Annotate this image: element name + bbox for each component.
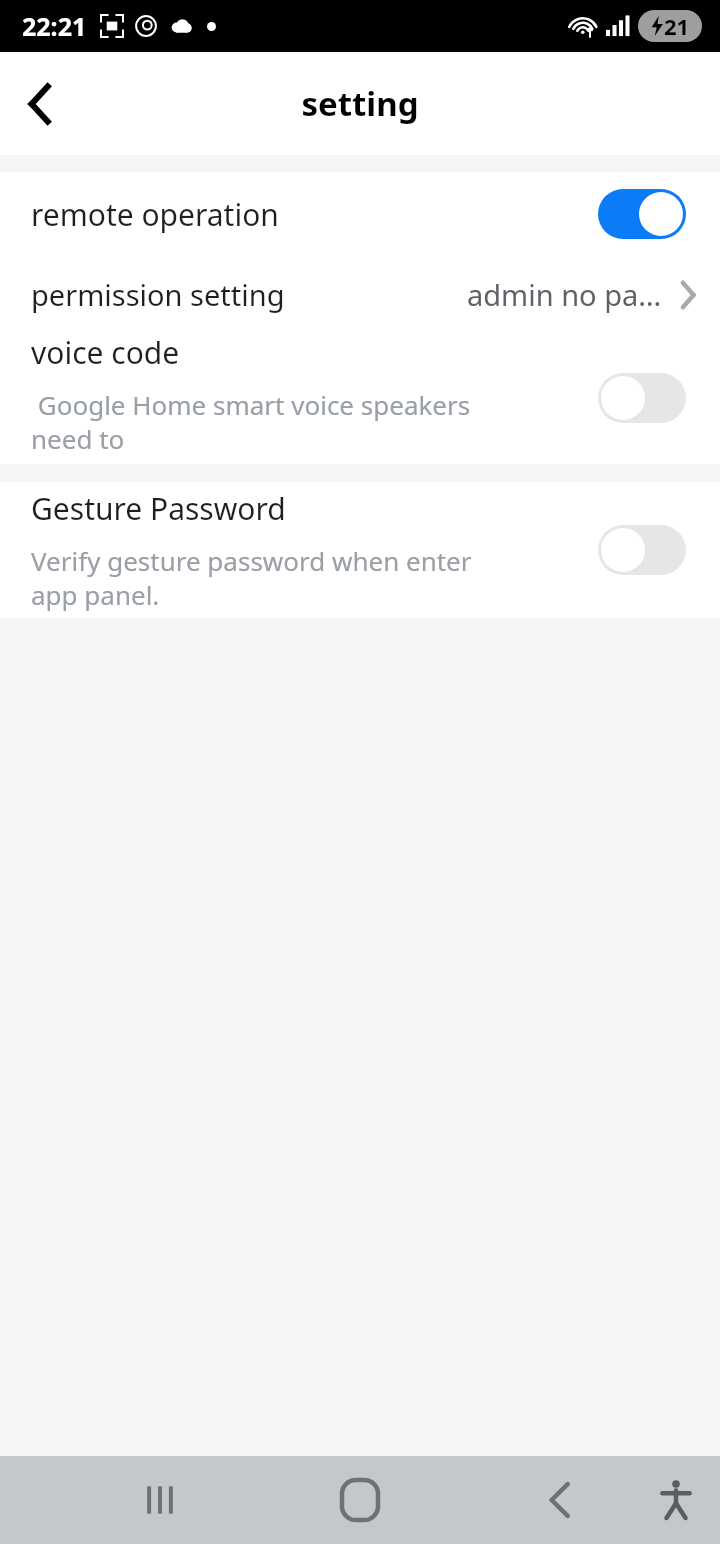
button[interactable]: Back: [8, 72, 72, 136]
button[interactable]: voice code: [0, 332, 720, 464]
staticText: setting: [301, 81, 419, 126]
button[interactable]: Accessibility: [636, 1460, 716, 1540]
staticText: Gesture Password: [31, 488, 286, 529]
button[interactable]: Toggle off: [598, 525, 686, 575]
staticText: Verify gesture password when enter app p…: [31, 543, 520, 612]
button[interactable]: remote operation: [0, 172, 720, 256]
staticText: 22:21: [22, 9, 87, 43]
staticText: permission setting: [31, 275, 285, 314]
staticText: admin no pa…: [467, 275, 662, 314]
button[interactable]: Toggle on: [598, 189, 686, 239]
staticText: 21: [664, 11, 690, 41]
button[interactable]: Home: [320, 1460, 400, 1540]
button[interactable]: Back: [520, 1460, 600, 1540]
staticText: remote operation: [31, 194, 279, 235]
button[interactable]: Gesture Password: [0, 482, 720, 618]
staticText: voice code: [31, 332, 180, 373]
button[interactable]: Toggle off: [598, 373, 686, 423]
staticText: Google Home smart voice speakers need to…: [31, 387, 520, 464]
button[interactable]: permission setting: [0, 256, 720, 332]
button[interactable]: Recent apps: [120, 1460, 200, 1540]
